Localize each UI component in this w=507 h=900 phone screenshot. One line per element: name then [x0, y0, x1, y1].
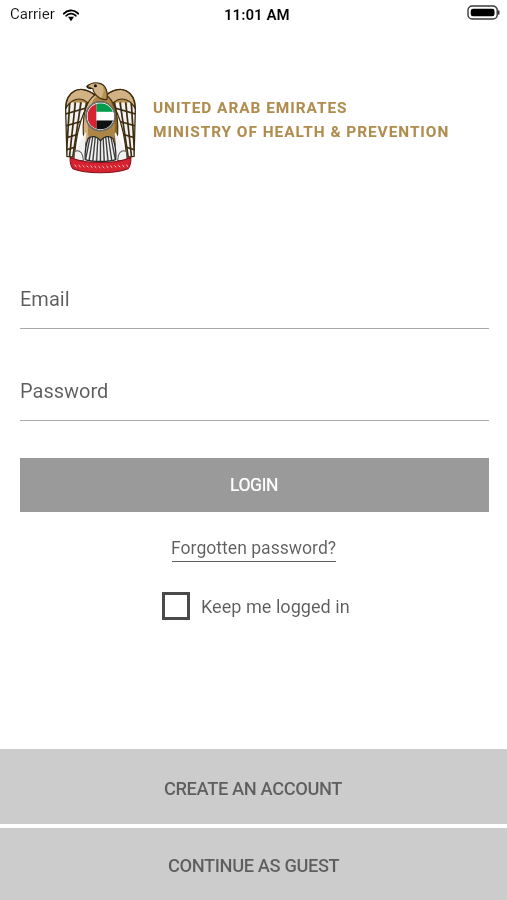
staticText: MINISTRY OF HEALTH & PREVENTION	[153, 123, 450, 141]
button[interactable]: Email	[20, 287, 70, 310]
staticText: Forgotten password?	[171, 538, 337, 559]
staticText: Email	[20, 287, 70, 310]
staticText: 11:01 AM	[224, 6, 290, 24]
staticText: Carrier	[10, 5, 55, 23]
button[interactable]: Password	[20, 379, 109, 402]
button[interactable]: CREATE AN ACCOUNT	[0, 749, 507, 824]
button[interactable]: LOGIN	[20, 458, 489, 512]
staticText: LOGIN	[230, 475, 279, 496]
staticText: CONTINUE AS GUEST	[168, 855, 340, 876]
staticText: Password	[20, 379, 109, 402]
other: Wi-Fi signal	[62, 7, 80, 21]
button[interactable]: CONTINUE AS GUEST	[0, 828, 507, 900]
staticText: CREATE AN ACCOUNT	[164, 778, 343, 799]
staticText: UNITED ARAB EMIRATES	[153, 99, 348, 117]
button[interactable]: Keep me logged in	[156, 590, 356, 624]
staticText: Keep me logged in	[201, 596, 350, 617]
button[interactable]: Forgotten password?	[163, 534, 345, 566]
other: Battery full	[468, 6, 502, 19]
